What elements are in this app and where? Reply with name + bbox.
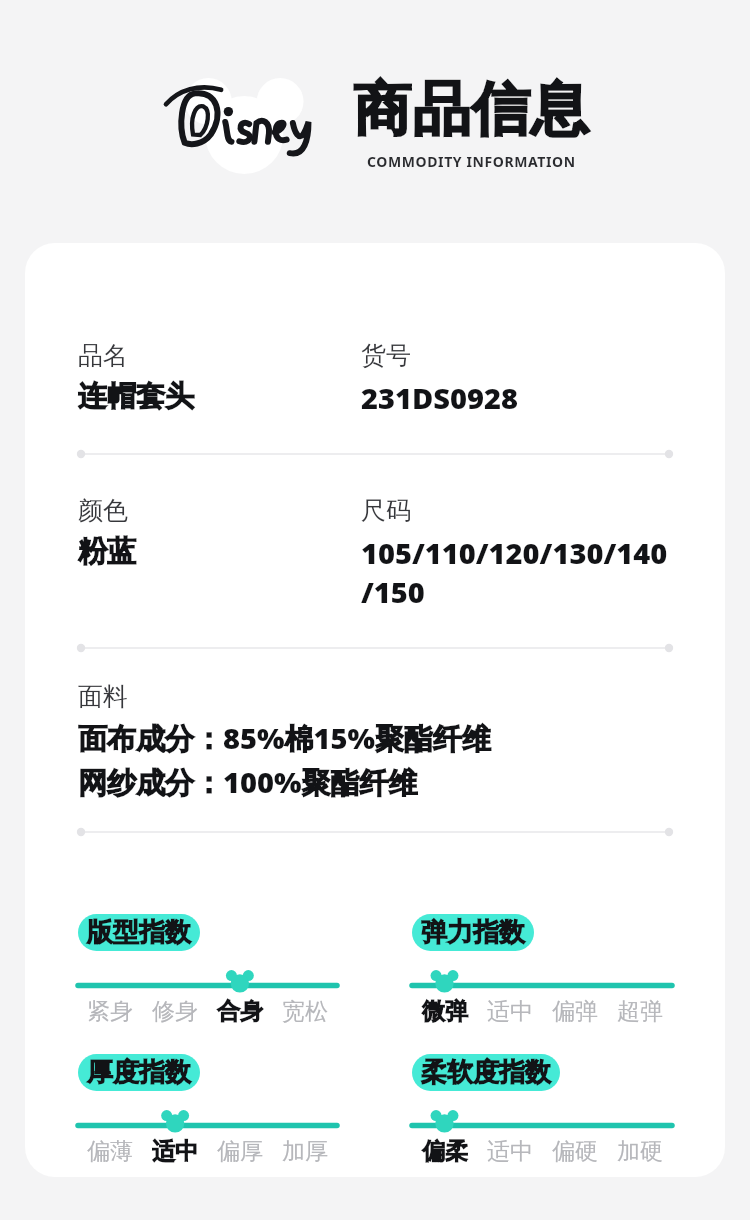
button[interactable]: 紧身 bbox=[78, 997, 142, 1026]
button[interactable]: 加厚 bbox=[272, 1137, 337, 1166]
button[interactable]: 偏柔 bbox=[412, 1137, 477, 1166]
staticText: 适中 bbox=[487, 997, 533, 1026]
button[interactable]: 适中 bbox=[477, 1137, 542, 1166]
staticText: 适中 bbox=[152, 1137, 198, 1166]
button[interactable]: 弹力指数 slider bbox=[412, 961, 672, 995]
button[interactable]: 修身 bbox=[142, 997, 207, 1026]
staticText: 版型指数 bbox=[87, 916, 191, 949]
staticText: COMMODITY INFORMATION bbox=[367, 152, 576, 171]
staticText: 尺码 bbox=[361, 495, 411, 526]
staticText: 颜色 bbox=[78, 495, 128, 526]
staticText: 超弹 bbox=[617, 997, 663, 1026]
staticText: 合身 bbox=[217, 997, 263, 1026]
staticText: 偏硬 bbox=[552, 1137, 598, 1166]
staticText: 偏柔 bbox=[422, 1137, 468, 1166]
staticText: 加硬 bbox=[617, 1137, 663, 1166]
staticText: 连帽套头 bbox=[78, 378, 194, 415]
button[interactable]: 适中 bbox=[477, 997, 542, 1026]
button[interactable]: 偏薄 bbox=[78, 1137, 142, 1166]
button[interactable]: 厚度指数 slider bbox=[78, 1101, 337, 1135]
button[interactable]: 加硬 bbox=[607, 1137, 672, 1166]
staticText: 商品信息 bbox=[353, 73, 589, 146]
button[interactable]: 柔软度指数 slider bbox=[412, 1101, 672, 1135]
staticText: 货号 bbox=[361, 340, 411, 371]
button[interactable]: 超弹 bbox=[607, 997, 672, 1026]
staticText: 品名 bbox=[78, 340, 128, 371]
staticText: 偏厚 bbox=[217, 1137, 263, 1166]
button[interactable]: 版型指数 slider bbox=[78, 961, 337, 995]
staticText: 宽松 bbox=[282, 997, 328, 1026]
staticText: 厚度指数 bbox=[87, 1056, 191, 1089]
button[interactable]: 弹力指数 bbox=[412, 914, 534, 951]
staticText: 231DS0928 bbox=[361, 378, 518, 417]
staticText: 加厚 bbox=[282, 1137, 328, 1166]
button[interactable]: 偏硬 bbox=[542, 1137, 607, 1166]
staticText: 适中 bbox=[487, 1137, 533, 1166]
staticText: 网纱成分：100%聚酯纤维 bbox=[78, 762, 418, 802]
staticText: 紧身 bbox=[87, 997, 133, 1026]
button[interactable]: 微弹 bbox=[412, 997, 477, 1026]
button[interactable]: 宽松 bbox=[272, 997, 337, 1026]
staticText: 105/110/120/130/140/150 bbox=[361, 533, 672, 611]
button[interactable]: 柔软度指数 bbox=[412, 1054, 560, 1091]
button[interactable]: 合身 bbox=[207, 997, 272, 1026]
staticText: 柔软度指数 bbox=[421, 1056, 551, 1089]
button[interactable]: 适中 bbox=[142, 1137, 207, 1166]
staticText: 弹力指数 bbox=[421, 916, 525, 949]
staticText: 偏薄 bbox=[87, 1137, 133, 1166]
staticText: 面料 bbox=[78, 681, 128, 712]
staticText: 偏弹 bbox=[552, 997, 598, 1026]
staticText: 微弹 bbox=[422, 997, 468, 1026]
button[interactable]: 版型指数 bbox=[78, 914, 200, 951]
button[interactable]: 厚度指数 bbox=[78, 1054, 200, 1091]
button[interactable]: 偏厚 bbox=[207, 1137, 272, 1166]
button[interactable]: 偏弹 bbox=[542, 997, 607, 1026]
staticText: 面布成分：85%棉15%聚酯纤维 bbox=[78, 718, 491, 758]
staticText: 修身 bbox=[152, 997, 198, 1026]
staticText: 粉蓝 bbox=[78, 533, 136, 570]
